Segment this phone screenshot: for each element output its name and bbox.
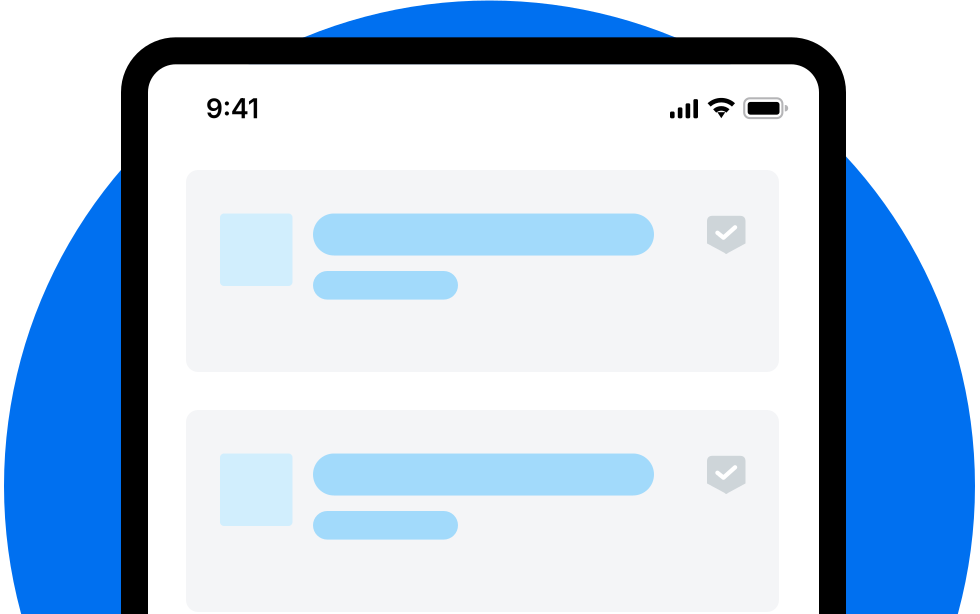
staticText: 9:41 xyxy=(206,92,259,125)
button[interactable]: Loading item 1 xyxy=(186,170,779,372)
button[interactable]: Loading item 2 xyxy=(186,410,779,612)
